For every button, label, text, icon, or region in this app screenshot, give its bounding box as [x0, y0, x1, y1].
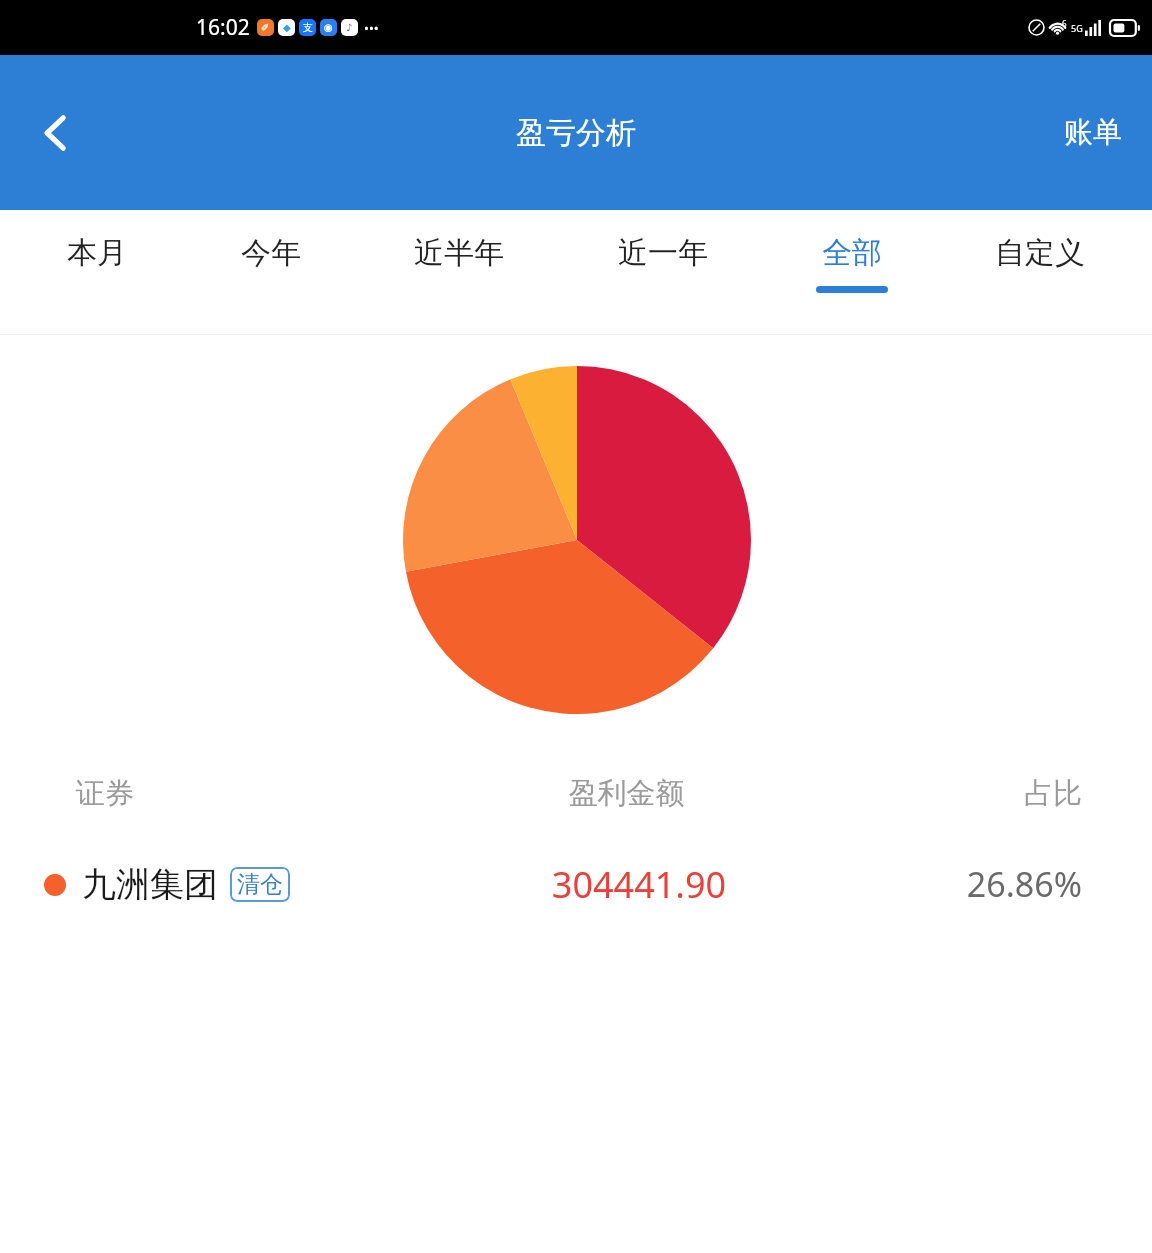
- button[interactable]: 近半年: [357, 210, 561, 334]
- staticText: 今年: [241, 234, 301, 272]
- staticText: 近一年: [618, 234, 708, 272]
- button[interactable]: 全部: [765, 210, 938, 334]
- button[interactable]: 本月: [10, 210, 184, 334]
- staticText: ♪: [346, 22, 353, 34]
- staticText: 支: [303, 21, 313, 34]
- button[interactable]: Back: [18, 95, 94, 171]
- staticText: 16:02: [196, 13, 250, 42]
- staticText: 账单: [1064, 114, 1122, 151]
- staticText: 盈利金额: [415, 775, 838, 812]
- staticText: 九洲集团: [82, 863, 218, 906]
- button[interactable]: 近一年: [561, 210, 765, 334]
- staticText: 本月: [67, 234, 127, 272]
- staticText: 5G: [1071, 22, 1083, 34]
- staticText: ✐: [261, 22, 270, 34]
- staticText: 证券: [76, 775, 415, 812]
- staticText: ◆: [283, 22, 291, 34]
- button[interactable]: 今年: [184, 210, 357, 334]
- button[interactable]: 九洲集团: [0, 836, 1152, 932]
- staticText: 占比: [838, 775, 1082, 812]
- button[interactable]: 账单: [1044, 100, 1142, 165]
- staticText: 304441.90: [445, 860, 833, 909]
- staticText: •••: [364, 19, 379, 37]
- staticText: 6: [1062, 18, 1067, 29]
- staticText: ◉: [324, 22, 333, 34]
- staticText: 全部: [822, 234, 882, 272]
- staticText: 清仓: [237, 870, 283, 899]
- staticText: 近半年: [414, 234, 504, 272]
- button[interactable]: 自定义: [938, 210, 1142, 334]
- staticText: 26.86%: [833, 861, 1082, 907]
- staticText: 盈亏分析: [516, 114, 636, 152]
- staticText: 自定义: [995, 234, 1085, 272]
